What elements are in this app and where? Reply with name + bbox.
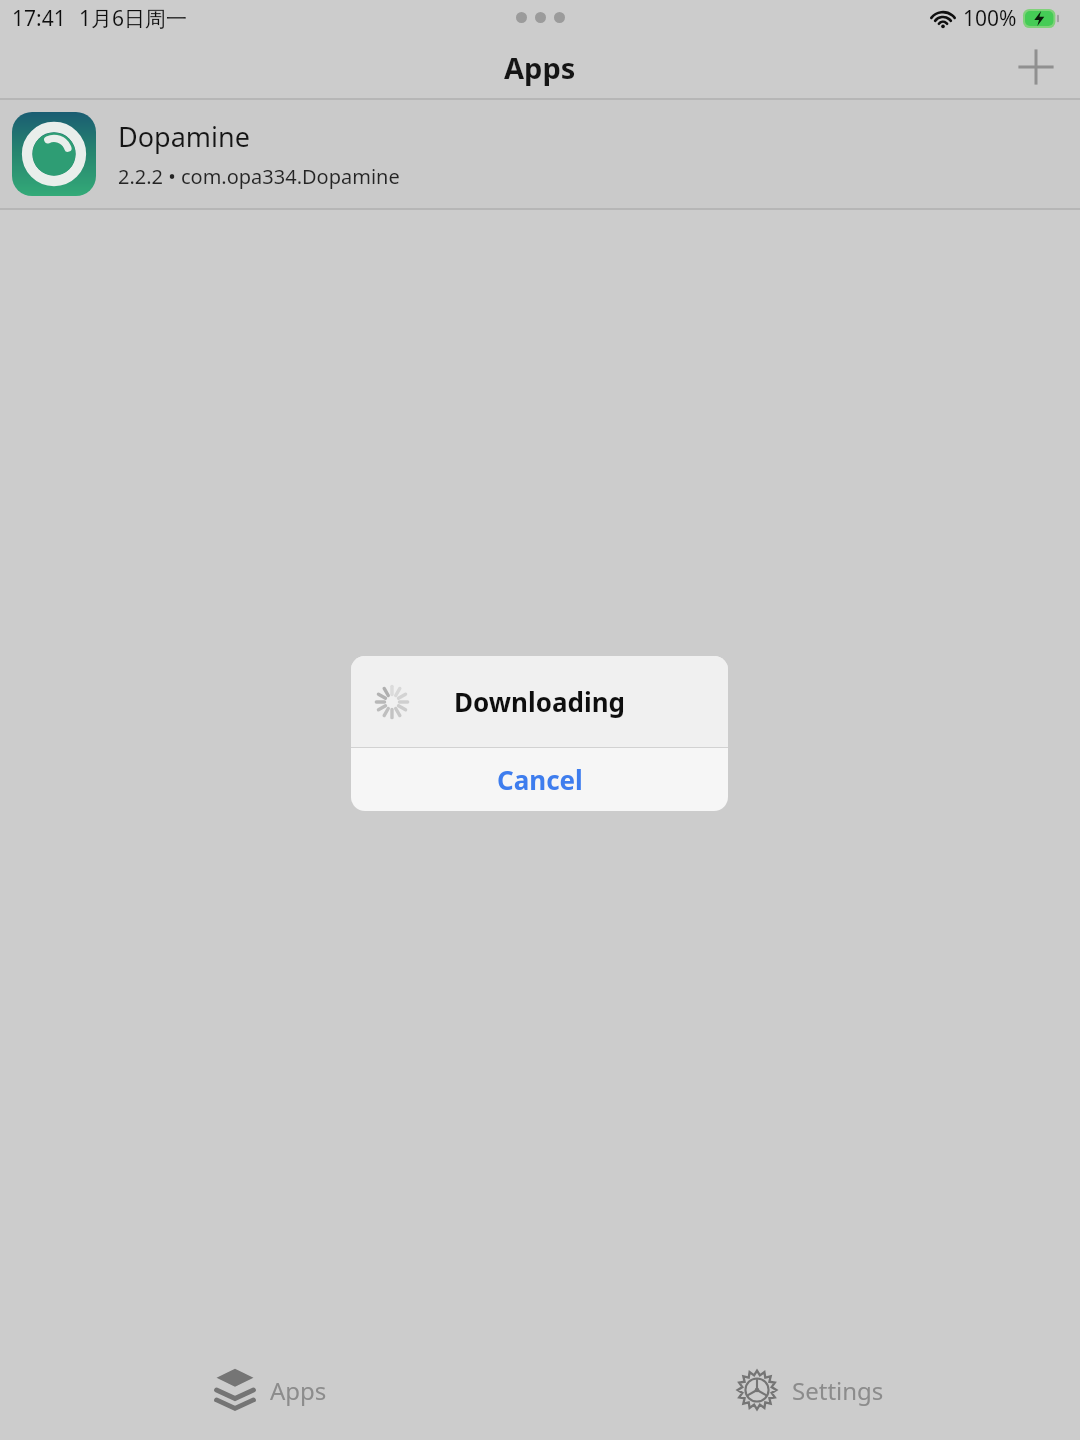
staticText: 100% <box>963 4 1017 33</box>
staticText: Cancel <box>497 762 583 797</box>
staticText: Apps <box>504 48 576 87</box>
staticText: Settings <box>792 1374 884 1407</box>
staticText: Apps <box>270 1374 327 1407</box>
button[interactable]: Settings <box>720 1357 900 1423</box>
button[interactable]: Apps <box>198 1355 343 1425</box>
staticText: 1月6日周一 <box>79 4 188 33</box>
staticText: 2.2.2 • com.opa334.Dopamine <box>118 163 400 190</box>
staticText: Dopamine <box>118 118 250 155</box>
button[interactable]: Add app <box>1008 39 1064 95</box>
staticText: Downloading <box>454 684 626 719</box>
button[interactable]: Dopamine <box>0 100 1080 208</box>
button[interactable]: Cancel <box>351 748 728 811</box>
staticText: 17:41 <box>12 4 66 33</box>
